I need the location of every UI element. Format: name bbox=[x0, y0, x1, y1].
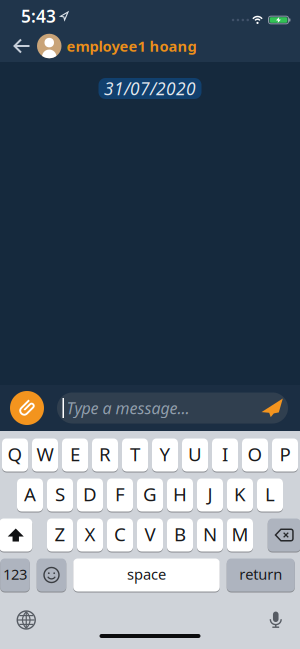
button[interactable]: M bbox=[227, 518, 253, 552]
button[interactable]: space bbox=[73, 558, 220, 592]
button[interactable]: Attach file bbox=[10, 391, 44, 425]
button[interactable]: Delete bbox=[268, 518, 300, 552]
staticText: J bbox=[207, 482, 212, 506]
button[interactable]: U bbox=[182, 438, 208, 472]
button[interactable]: O bbox=[242, 438, 268, 472]
staticText: N bbox=[203, 522, 217, 546]
staticText: A bbox=[24, 482, 36, 506]
button[interactable]: S bbox=[47, 478, 73, 512]
button[interactable]: Y bbox=[152, 438, 178, 472]
button[interactable]: Shift bbox=[0, 518, 32, 552]
button[interactable]: Next keyboard bbox=[17, 611, 35, 629]
button[interactable]: Back bbox=[0, 38, 37, 54]
staticText: 123 bbox=[3, 564, 27, 584]
button[interactable]: P bbox=[272, 438, 298, 472]
button[interactable]: G bbox=[137, 478, 163, 512]
button[interactable]: Send bbox=[261, 398, 288, 417]
staticText: M bbox=[231, 522, 248, 546]
button[interactable]: D bbox=[77, 478, 103, 512]
button[interactable]: W bbox=[32, 438, 58, 472]
staticText: Y bbox=[159, 442, 170, 466]
button[interactable]: T bbox=[122, 438, 148, 472]
button[interactable]: F bbox=[107, 478, 133, 512]
button[interactable]: return bbox=[227, 558, 295, 592]
button[interactable]: X bbox=[77, 518, 103, 552]
button[interactable]: V bbox=[137, 518, 163, 552]
staticText: G bbox=[143, 482, 157, 506]
staticText: E bbox=[70, 442, 80, 466]
button[interactable]: H bbox=[167, 478, 193, 512]
button[interactable]: Q bbox=[2, 438, 28, 472]
button[interactable]: 123 bbox=[0, 558, 30, 592]
button[interactable]: J bbox=[197, 478, 223, 512]
button[interactable]: Dictate bbox=[269, 612, 283, 628]
button[interactable]: Type a message bbox=[57, 397, 261, 419]
button[interactable]: R bbox=[92, 438, 118, 472]
staticText: R bbox=[99, 442, 111, 466]
button[interactable]: I bbox=[212, 438, 238, 472]
button[interactable]: Emoji bbox=[37, 558, 66, 592]
staticText: P bbox=[279, 442, 290, 466]
staticText: Type a message... bbox=[66, 397, 189, 419]
staticText: I bbox=[222, 442, 228, 466]
staticText: 5:43 bbox=[21, 4, 56, 27]
staticText: B bbox=[174, 522, 186, 546]
staticText: L bbox=[265, 482, 275, 506]
button[interactable]: B bbox=[167, 518, 193, 552]
button[interactable]: N bbox=[197, 518, 223, 552]
staticText: X bbox=[84, 522, 95, 546]
staticText: H bbox=[173, 482, 187, 506]
staticText: O bbox=[247, 442, 262, 466]
button[interactable]: A bbox=[17, 478, 43, 512]
staticText: T bbox=[130, 442, 140, 466]
staticText: employee1 hoang bbox=[66, 36, 196, 56]
button[interactable]: C bbox=[107, 518, 133, 552]
button[interactable]: L bbox=[257, 478, 283, 512]
button[interactable]: K bbox=[227, 478, 253, 512]
staticText: C bbox=[114, 522, 126, 546]
staticText: K bbox=[234, 482, 246, 506]
staticText: Z bbox=[54, 522, 65, 546]
staticText: D bbox=[83, 482, 97, 506]
staticText: S bbox=[55, 482, 65, 506]
button[interactable]: Z bbox=[47, 518, 73, 552]
staticText: space bbox=[127, 564, 166, 584]
staticText: return bbox=[239, 564, 282, 584]
button[interactable]: employee1 hoang bbox=[37, 34, 196, 58]
staticText: F bbox=[115, 482, 125, 506]
staticText: W bbox=[36, 442, 53, 466]
button[interactable]: E bbox=[62, 438, 88, 472]
staticText: Q bbox=[7, 442, 22, 466]
staticText: 31/07/2020 bbox=[104, 77, 196, 100]
staticText: V bbox=[144, 522, 155, 546]
staticText: U bbox=[188, 442, 202, 466]
